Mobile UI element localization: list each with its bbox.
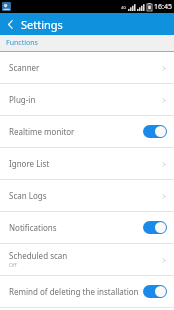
staticText: Scan Logs (9, 190, 47, 201)
staticText: Notifications (9, 222, 57, 233)
staticText: 4G (121, 5, 127, 10)
button[interactable]: Notifications (0, 212, 174, 243)
button[interactable]: Scan Logs (0, 180, 174, 211)
button[interactable]: Scheduled scan (0, 244, 174, 275)
staticText: Functions (6, 38, 38, 48)
button[interactable]: Realtime monitor (0, 116, 174, 147)
button[interactable]: Toggle (143, 221, 167, 234)
button[interactable]: Back (0, 13, 21, 35)
staticText: Remind of deleting the installation (9, 286, 139, 297)
staticText: Scanner (9, 62, 40, 73)
button[interactable]: Ignore List (0, 148, 174, 179)
button[interactable]: Toggle (143, 285, 167, 298)
button[interactable]: Toggle (143, 125, 167, 138)
staticText: Settings (21, 17, 63, 32)
button[interactable]: Plug-in (0, 84, 174, 115)
staticText: Plug-in (9, 94, 36, 105)
staticText: Ignore List (9, 158, 50, 169)
staticText: 16:45 (154, 2, 172, 12)
staticText: Off (9, 262, 17, 269)
staticText: Realtime monitor (9, 126, 75, 137)
button[interactable]: Scanner (0, 52, 174, 83)
button[interactable]: Remind of deleting the installation (0, 276, 174, 307)
staticText: Scheduled scan (9, 250, 68, 261)
